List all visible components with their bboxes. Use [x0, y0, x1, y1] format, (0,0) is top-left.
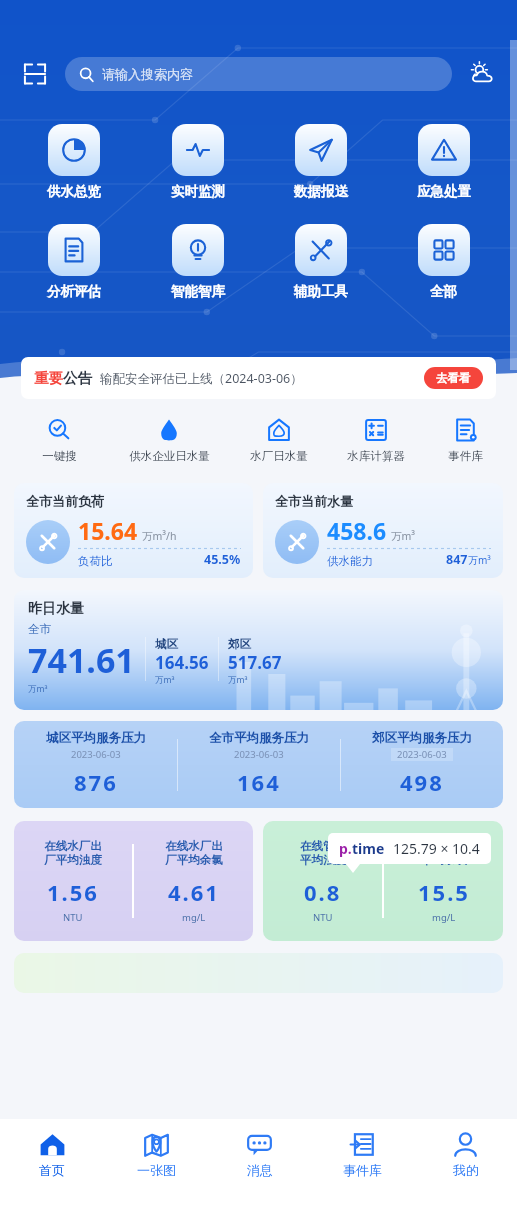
- staticText: mg/L: [182, 911, 206, 924]
- staticText: 平均浊度: [300, 853, 346, 867]
- button[interactable]: 昨日水量: [14, 590, 503, 710]
- staticText: 供水总览: [47, 183, 101, 200]
- staticText: 458.6: [327, 515, 387, 546]
- staticText: 昨日水量: [28, 600, 84, 618]
- staticText: 请输入搜索内容: [102, 66, 193, 82]
- staticText: mg/L: [432, 911, 456, 924]
- staticText: 我的: [453, 1162, 479, 1178]
- staticText: 一键搜: [42, 449, 77, 463]
- button[interactable]: 事件库: [424, 417, 507, 463]
- staticText: 万m³: [391, 529, 415, 543]
- button[interactable]: 请输入搜索内容: [65, 57, 452, 91]
- staticText: 城区平均服务压力: [46, 730, 146, 746]
- button[interactable]: 在线水厂出: [134, 839, 253, 924]
- staticText: 1.56: [47, 877, 99, 907]
- staticText: 水库计算器: [347, 449, 405, 463]
- staticText: 15.64: [78, 515, 138, 546]
- staticText: 事件库: [343, 1162, 382, 1178]
- button[interactable]: 供水总览: [12, 124, 136, 200]
- staticText: 数据报送: [294, 183, 348, 200]
- button[interactable]: 消息: [208, 1131, 311, 1178]
- staticText: 厂平均浊度: [44, 853, 102, 867]
- button[interactable]: 实时监测: [136, 124, 259, 200]
- staticText: 一张图: [137, 1162, 176, 1178]
- staticText: 首页: [39, 1162, 65, 1178]
- button[interactable]: 水厂日水量: [230, 417, 327, 463]
- button[interactable]: 全市平均服务压力: [178, 730, 340, 799]
- staticText: 水厂日水量: [250, 449, 308, 463]
- button[interactable]: 应急处置: [382, 124, 505, 200]
- button[interactable]: 水库计算器: [327, 417, 424, 463]
- staticText: 2023-06-03: [234, 748, 284, 761]
- staticText: 智能智库: [171, 283, 225, 300]
- button[interactable]: 在线水厂出: [14, 839, 132, 924]
- button[interactable]: 全市当前水量: [263, 483, 503, 578]
- button[interactable]: 一键搜: [10, 417, 108, 463]
- button[interactable]: 一张图: [104, 1131, 208, 1178]
- staticText: 在线水厂出: [44, 839, 102, 853]
- staticText: 负荷比: [78, 554, 113, 568]
- staticText: 876: [74, 767, 118, 797]
- staticText: 全市当前负荷: [26, 493, 104, 509]
- staticText: 741.61: [28, 637, 135, 683]
- staticText: 分析评估: [47, 283, 101, 300]
- staticText: NTU: [313, 911, 333, 924]
- staticText: 万m³: [155, 674, 175, 686]
- staticText: 2023-06-03: [397, 748, 447, 761]
- staticText: NTU: [63, 911, 83, 924]
- button[interactable]: 首页: [0, 1131, 104, 1178]
- button[interactable]: 辅助工具: [259, 224, 382, 300]
- staticText: 万m³/h: [142, 529, 177, 543]
- staticText: 消息: [247, 1162, 273, 1178]
- button[interactable]: [14, 953, 503, 993]
- staticText: 万m³: [228, 674, 248, 686]
- button[interactable]: 我的: [414, 1131, 517, 1178]
- button[interactable]: 去看看: [424, 367, 483, 389]
- staticText: 供水能力: [327, 554, 373, 568]
- staticText: 平均余氯: [421, 853, 467, 867]
- button[interactable]: 城区平均服务压力: [14, 730, 177, 799]
- staticText: 公告: [63, 369, 92, 387]
- staticText: 全市: [28, 622, 51, 636]
- button[interactable]: 供水企业日水量: [108, 417, 230, 463]
- staticText: 125.79 × 10.4: [393, 839, 480, 858]
- button[interactable]: 全部: [382, 224, 505, 300]
- staticText: 45.5%: [204, 551, 241, 568]
- staticText: 847: [446, 551, 468, 568]
- button[interactable]: 在线管网: [384, 839, 503, 924]
- staticText: 输配安全评估已上线（2024-03-06）: [100, 370, 303, 387]
- staticText: 在线管网: [300, 839, 346, 853]
- button[interactable]: 事件库: [311, 1131, 414, 1178]
- staticText: 0.8: [304, 877, 342, 907]
- staticText: 城区: [155, 637, 178, 651]
- staticText: 全市平均服务压力: [209, 730, 309, 746]
- button[interactable]: 在线管网: [263, 839, 382, 924]
- staticText: 万m³: [28, 683, 48, 695]
- button[interactable]: 分析评估: [12, 224, 136, 300]
- staticText: 郊区: [228, 637, 251, 651]
- staticText: 重要: [34, 369, 63, 387]
- staticText: time: [352, 839, 385, 858]
- staticText: 供水企业日水量: [129, 449, 210, 463]
- staticText: 164: [237, 767, 281, 797]
- button[interactable]: 全市当前负荷: [14, 483, 253, 578]
- button[interactable]: Weather: [465, 57, 499, 91]
- staticText: p.: [339, 839, 352, 858]
- button[interactable]: 郊区平均服务压力: [341, 730, 503, 799]
- staticText: 在线水厂出: [165, 839, 223, 853]
- button[interactable]: 重要: [21, 357, 496, 399]
- staticText: 15.5: [418, 877, 470, 907]
- staticText: 2023-06-03: [71, 748, 121, 761]
- staticText: 辅助工具: [294, 283, 348, 300]
- staticText: 498: [400, 767, 444, 797]
- button[interactable]: 数据报送: [259, 124, 382, 200]
- staticText: 去看看: [436, 371, 471, 385]
- staticText: 应急处置: [417, 183, 471, 200]
- staticText: 事件库: [448, 449, 483, 463]
- staticText: 517.67: [228, 651, 282, 674]
- button[interactable]: Scan: [18, 57, 52, 91]
- staticText: 全市当前水量: [275, 493, 353, 509]
- staticText: 全部: [430, 283, 457, 300]
- staticText: 4.61: [168, 877, 220, 907]
- button[interactable]: 智能智库: [136, 224, 259, 300]
